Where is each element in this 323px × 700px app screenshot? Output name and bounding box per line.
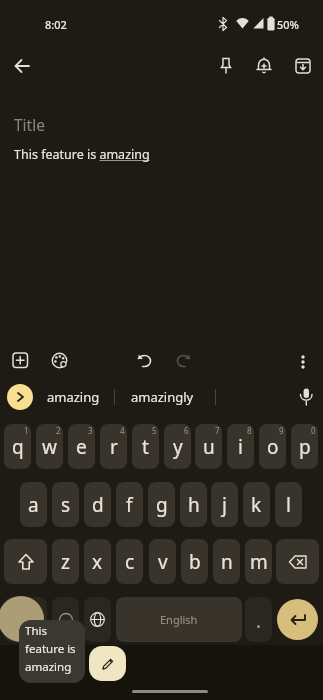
staticText: 8:02 [45,17,67,32]
button[interactable] [293,56,313,76]
button[interactable] [135,352,152,369]
button[interactable]: r [100,424,127,469]
staticText: x [92,549,103,575]
button[interactable] [12,56,32,76]
staticText: n [221,549,233,575]
button[interactable] [176,352,193,369]
button[interactable] [277,599,318,640]
staticText: amazing [47,388,100,406]
button[interactable] [52,597,79,642]
staticText: t [142,434,149,460]
staticText: amazingly [131,388,194,406]
button[interactable]: d [84,482,111,527]
staticText: b [189,549,201,575]
button[interactable]: o [259,424,286,469]
staticText: y [173,434,183,460]
staticText: 5 [152,425,157,436]
button[interactable] [89,646,126,681]
button[interactable]: This feature is amazing [19,620,85,683]
button[interactable]: y [164,424,191,469]
button[interactable]: u [195,424,222,469]
button[interactable]: j [211,482,238,527]
staticText: 1 [24,425,29,436]
button[interactable] [51,352,68,369]
staticText: d [92,492,104,518]
button[interactable]: t [132,424,159,469]
button[interactable] [216,56,236,76]
button[interactable]: q [4,424,31,469]
button[interactable] [276,539,319,584]
staticText: 8 [247,425,252,436]
button[interactable]: i [227,424,254,469]
button[interactable]: s [52,482,79,527]
staticText: h [188,492,200,518]
button[interactable]: amazing [40,384,106,410]
button[interactable]: a [20,482,47,527]
staticText: a [28,492,39,518]
button[interactable]: f [116,482,143,527]
button[interactable] [298,388,315,407]
staticText: 7 [215,425,220,436]
button[interactable]: x [84,539,111,584]
button[interactable]: English [116,597,242,642]
staticText: z [61,549,70,575]
staticText: f [126,492,133,518]
button[interactable]: e [68,424,95,469]
button[interactable]: k [243,482,270,527]
button[interactable]: l [275,482,302,527]
staticText: 50% [277,17,299,32]
button[interactable]: v [149,539,176,584]
staticText: m [250,549,268,575]
button[interactable]: c [116,539,143,584]
staticText: r [110,434,118,460]
staticText: Title [14,114,45,135]
staticText: s [61,492,71,518]
button[interactable]: amazingly [122,384,202,410]
staticText: q [12,434,24,460]
button[interactable] [295,350,311,372]
button[interactable] [254,56,274,76]
staticText: e [76,434,87,460]
staticText: 3 [88,425,93,436]
staticText: This feature is amazing [25,623,76,674]
staticText: ?123 [14,612,38,627]
staticText: 9 [279,425,284,436]
staticText: 2 [56,425,61,436]
staticText: l [286,492,291,518]
button[interactable]: n [213,539,240,584]
staticText: g [156,492,168,518]
button[interactable]: z [52,539,79,584]
staticText: c [125,549,135,575]
staticText: This feature is amazing [14,146,150,163]
staticText: 4 [120,425,125,436]
staticText: k [251,492,262,518]
button[interactable]: p [291,424,318,469]
button[interactable] [12,352,29,369]
button[interactable]: w [36,424,63,469]
button[interactable]: m [245,539,272,584]
button[interactable] [84,597,111,642]
staticText: i [238,434,243,460]
staticText: 0 [311,425,316,436]
staticText: v [158,549,168,575]
button[interactable] [245,597,272,642]
staticText: 6 [184,425,189,436]
staticText: English [160,612,198,627]
staticText: u [203,434,215,460]
button[interactable] [7,384,33,410]
button[interactable]: h [180,482,207,527]
staticText: p [299,434,311,460]
button[interactable]: b [181,539,208,584]
staticText: w [42,434,57,460]
staticText: o [267,434,279,460]
staticText: j [222,492,227,518]
button[interactable]: g [148,482,175,527]
button[interactable]: ?123 [4,597,47,642]
button[interactable] [4,539,47,584]
